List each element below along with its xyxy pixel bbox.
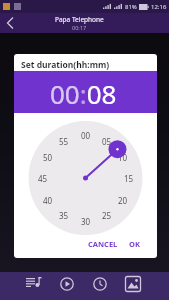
button[interactable]: OK xyxy=(125,235,144,253)
staticText: 05 xyxy=(102,136,112,146)
staticText: 00:08 xyxy=(50,76,117,111)
button[interactable] xyxy=(26,275,43,290)
staticText: 45 xyxy=(38,173,48,183)
staticText: 81% xyxy=(125,3,137,11)
button[interactable]: CANCEL xyxy=(84,235,122,253)
button[interactable] xyxy=(125,276,142,292)
staticText: 55 xyxy=(59,136,69,146)
staticText: Set duration(hh:mm) xyxy=(21,59,110,71)
staticText: 00:17 xyxy=(72,24,87,31)
staticText: 30 xyxy=(81,216,91,226)
staticText: CANCEL xyxy=(88,239,118,249)
staticText: 35 xyxy=(59,210,69,220)
button[interactable] xyxy=(60,277,74,291)
staticText: OK xyxy=(129,239,140,249)
staticText: 15 xyxy=(124,173,134,183)
staticText: 40 xyxy=(43,195,53,205)
staticText: 20 xyxy=(118,195,128,205)
button[interactable] xyxy=(93,277,107,291)
staticText: 12:16 xyxy=(151,3,167,11)
staticText: 25 xyxy=(102,210,112,220)
staticText: 50 xyxy=(43,152,53,162)
staticText: 00 xyxy=(81,130,91,140)
staticText: Papa Telephone xyxy=(55,15,104,24)
staticText: 10 xyxy=(118,152,128,162)
button[interactable] xyxy=(0,13,24,33)
